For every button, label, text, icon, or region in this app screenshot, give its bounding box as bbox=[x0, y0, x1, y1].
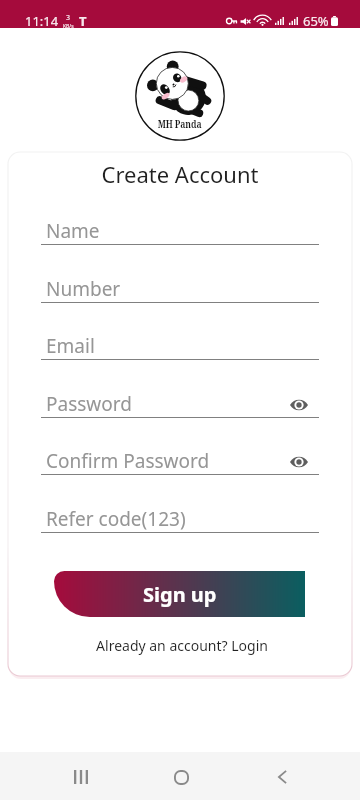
staticText: 11:14 bbox=[25, 12, 59, 30]
staticText: Sign up bbox=[143, 581, 217, 608]
button[interactable]: Refer code(123) bbox=[41, 502, 319, 532]
button[interactable]: Sign up bbox=[54, 571, 305, 617]
button[interactable]: Email bbox=[41, 329, 319, 359]
button[interactable]: Home bbox=[157, 753, 205, 800]
button[interactable]: Confirm Password bbox=[41, 444, 319, 474]
button[interactable]: Recent apps bbox=[57, 753, 105, 800]
staticText: Email bbox=[46, 333, 95, 359]
staticText: KB/s bbox=[63, 23, 74, 30]
staticText: MH Panda bbox=[158, 117, 202, 131]
staticText: Confirm Password bbox=[46, 448, 210, 474]
button[interactable]: Show password bbox=[286, 392, 312, 418]
button[interactable]: Password bbox=[41, 387, 319, 417]
button[interactable]: Number bbox=[41, 272, 319, 302]
staticText: T bbox=[79, 12, 87, 30]
button[interactable]: Name bbox=[41, 214, 319, 244]
staticText: Number bbox=[46, 276, 121, 302]
button[interactable]: Show password bbox=[286, 449, 312, 475]
button[interactable]: Back bbox=[258, 753, 306, 800]
staticText: Password bbox=[46, 391, 132, 417]
button[interactable]: Already an account? Login bbox=[2, 636, 360, 655]
staticText: Refer code(123) bbox=[46, 506, 186, 532]
staticText: Name bbox=[46, 218, 100, 244]
staticText: 65% bbox=[303, 12, 329, 30]
staticText: Create Account bbox=[0, 159, 360, 189]
staticText: 3 bbox=[66, 13, 71, 23]
